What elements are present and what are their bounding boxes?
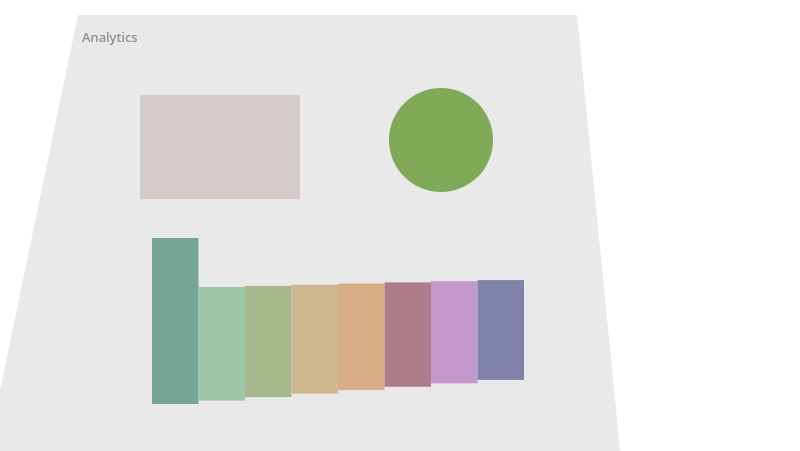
button[interactable]: Analytics xyxy=(66,18,576,56)
button[interactable] xyxy=(138,93,302,201)
button[interactable]: Completion chart xyxy=(387,86,495,194)
button[interactable] xyxy=(148,234,526,406)
staticText: Analytics xyxy=(82,28,138,46)
